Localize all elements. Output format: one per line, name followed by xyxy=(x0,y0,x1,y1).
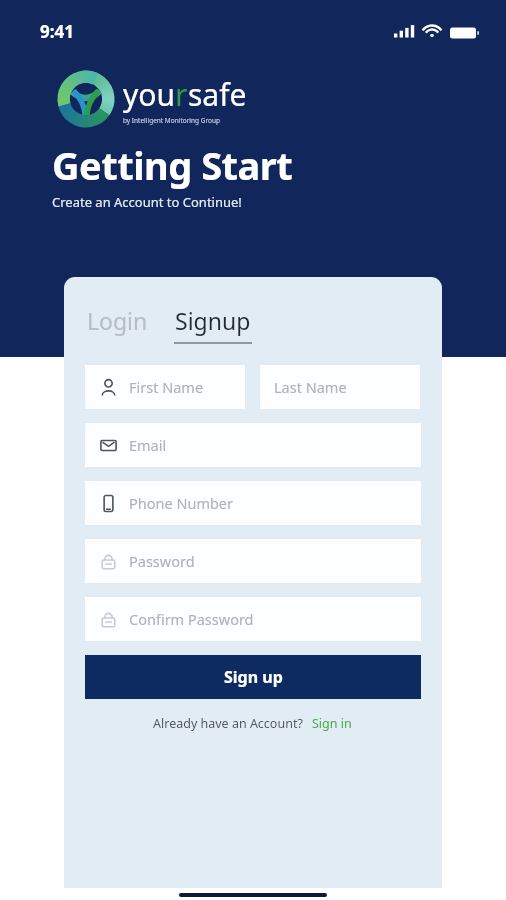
staticText: Confirm Password xyxy=(129,609,254,629)
button[interactable]: Sign up xyxy=(85,655,421,699)
button[interactable]: Confirm Password xyxy=(85,597,421,641)
staticText: Signup xyxy=(175,305,251,336)
staticText: Login xyxy=(87,305,148,336)
staticText: Email xyxy=(129,435,167,455)
button[interactable]: Sign in xyxy=(310,713,354,734)
staticText: Already have an Account? xyxy=(153,715,303,732)
button[interactable]: Phone Number xyxy=(85,481,421,525)
staticText: Sign in xyxy=(312,715,352,732)
button[interactable]: Login xyxy=(85,303,150,338)
button[interactable]: First Name xyxy=(85,365,245,409)
staticText: Password xyxy=(129,551,195,571)
staticText: Last Name xyxy=(274,377,347,397)
staticText: Phone Number xyxy=(129,493,234,513)
staticText: r xyxy=(175,74,188,115)
button[interactable]: Signup xyxy=(172,303,254,346)
staticText: Create an Account to Continue! xyxy=(52,193,242,211)
staticText: you xyxy=(123,74,175,115)
button[interactable]: Last Name xyxy=(260,365,420,409)
staticText: First Name xyxy=(129,377,204,397)
staticText: safe xyxy=(188,74,247,115)
button[interactable]: Email xyxy=(85,423,421,467)
staticText: Sign up xyxy=(224,666,283,688)
staticText: by Intelligent Monitoring Group xyxy=(123,116,220,125)
button[interactable]: Password xyxy=(85,539,421,583)
staticText: Getting Start xyxy=(52,139,293,191)
staticText: 9:41 xyxy=(40,20,74,43)
